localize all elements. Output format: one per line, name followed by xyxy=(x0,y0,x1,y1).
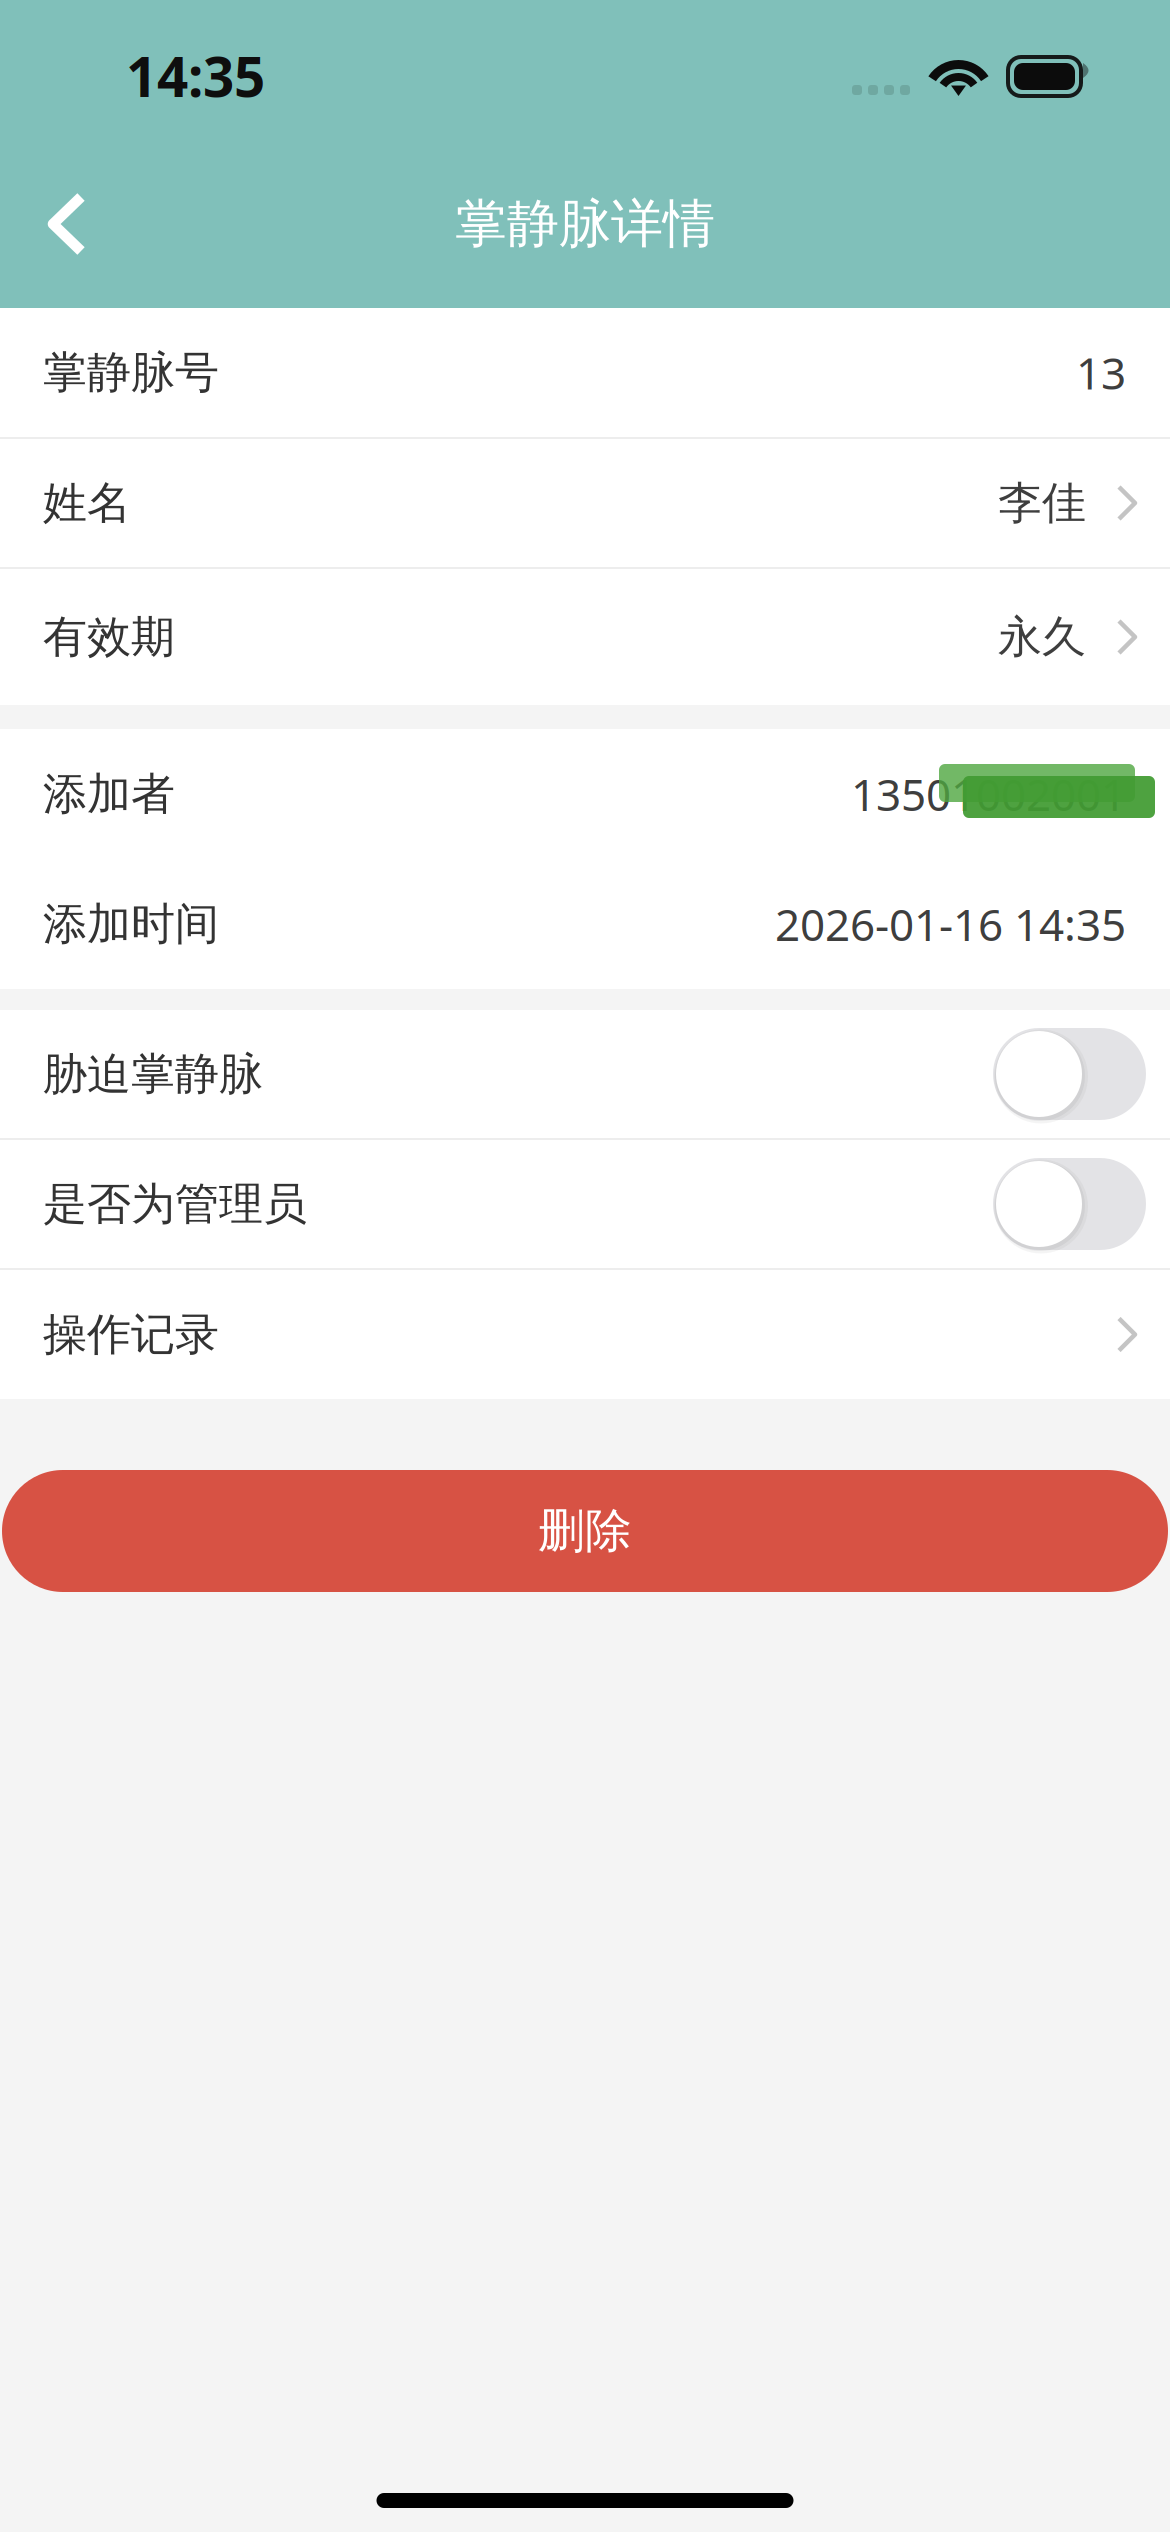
staticText: 有效期 xyxy=(43,609,175,665)
staticText: 添加者 xyxy=(43,766,175,822)
button[interactable]: 胁迫掌静脉 xyxy=(993,1028,1146,1120)
staticText: 操作记录 xyxy=(43,1307,219,1362)
staticText: 掌静脉号 xyxy=(43,345,219,400)
staticText: 添加时间 xyxy=(43,896,219,952)
staticText: 胁迫掌静脉 xyxy=(43,1046,263,1102)
staticText: 13501002001 xyxy=(851,764,1126,824)
staticText: 13 xyxy=(1076,342,1126,402)
staticText: 姓名 xyxy=(43,475,131,531)
staticText: 删除 xyxy=(538,1502,632,1560)
staticText: 李佳 xyxy=(998,475,1086,531)
button[interactable]: Back xyxy=(0,164,117,294)
button[interactable]: 姓名 xyxy=(0,439,1170,567)
staticText: 永久 xyxy=(998,609,1086,665)
staticText: 14:35 xyxy=(126,38,265,113)
button[interactable]: 删除 xyxy=(2,1470,1168,1592)
staticText: 是否为管理员 xyxy=(43,1176,307,1232)
button[interactable]: 操作记录 xyxy=(0,1270,1170,1399)
staticText: 2026-01-16 14:35 xyxy=(775,894,1126,954)
button[interactable]: 是否为管理员 xyxy=(993,1158,1146,1250)
staticText: 掌静脉详情 xyxy=(455,191,715,257)
button[interactable]: 有效期 xyxy=(0,569,1170,705)
